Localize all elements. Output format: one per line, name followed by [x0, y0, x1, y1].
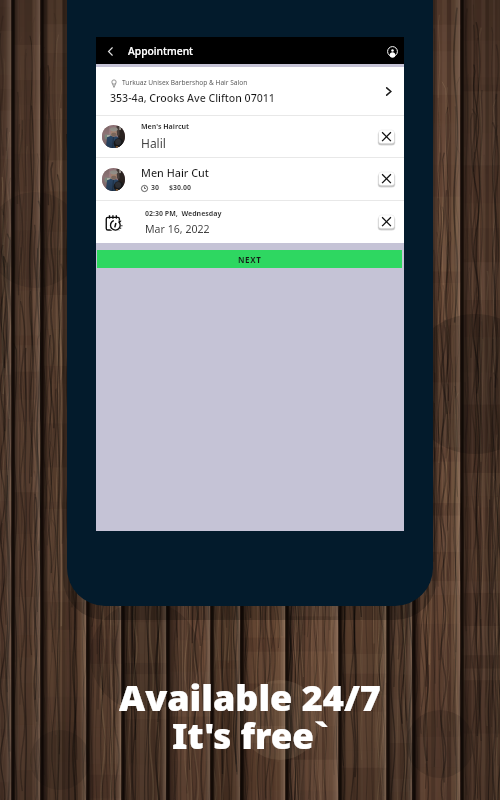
- staticText: $30.00: [169, 183, 191, 193]
- staticText: Mar 16, 2022: [145, 222, 210, 236]
- button[interactable]: Remove: [378, 172, 395, 186]
- button[interactable]: Remove: [378, 215, 395, 229]
- staticText: Men Hair Cut: [141, 165, 209, 180]
- staticText: It's free`: [172, 712, 329, 760]
- staticText: 02:30 PM, Wednesday: [145, 209, 222, 219]
- button[interactable]: Account: [381, 40, 403, 62]
- button[interactable]: Men Hair Cut: [96, 158, 404, 200]
- button[interactable]: NEXT: [97, 250, 402, 268]
- staticText: Appointment: [128, 44, 194, 58]
- button[interactable]: Turkuaz Unisex Barbershop & Hair Salon: [96, 67, 404, 115]
- button[interactable]: Men's Haircut: [96, 116, 404, 157]
- button[interactable]: 02:30 PM, Wednesday: [96, 201, 404, 243]
- staticText: 30: [151, 183, 160, 193]
- staticText: Men's Haircut: [141, 122, 190, 132]
- staticText: Available 24/7: [119, 673, 381, 722]
- staticText: Turkuaz Unisex Barbershop & Hair Salon: [122, 78, 248, 87]
- button[interactable]: Back: [100, 41, 120, 61]
- staticText: 353-4a, Crooks Ave Clifton 07011: [110, 91, 275, 105]
- staticText: NEXT: [238, 254, 262, 265]
- button[interactable]: Remove: [378, 130, 395, 144]
- staticText: Halil: [141, 135, 166, 151]
